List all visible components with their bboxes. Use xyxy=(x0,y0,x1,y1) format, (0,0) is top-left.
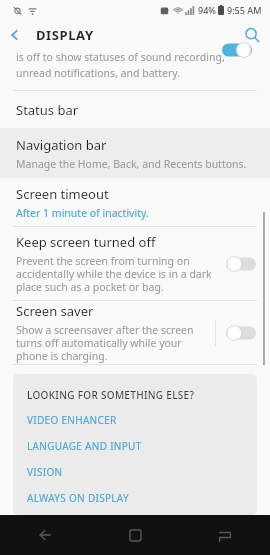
button[interactable]: Keep screen turned off xyxy=(0,227,270,300)
button[interactable]: Toggle xyxy=(226,325,256,341)
staticText: Keep screen turned off xyxy=(16,233,156,251)
staticText: DISPLAY xyxy=(36,26,94,44)
staticText: After 1 minute of inactivity. xyxy=(16,206,149,220)
staticText: VISION xyxy=(27,465,63,479)
staticText: Screen timeout xyxy=(16,185,109,203)
button[interactable]: Back xyxy=(0,20,30,50)
button[interactable]: Status bar xyxy=(0,91,270,128)
button[interactable]: Home xyxy=(90,515,180,555)
staticText: Status bar xyxy=(16,101,79,119)
staticText: 9:55 AM xyxy=(227,4,262,16)
staticText: Show a screensaver after the screen turn… xyxy=(16,323,209,363)
button[interactable]: Back xyxy=(0,515,90,555)
button[interactable]: Toggle xyxy=(226,256,256,272)
button[interactable]: VISION xyxy=(27,465,245,479)
button[interactable]: Screen timeout xyxy=(0,178,270,226)
staticText: LOOKING FOR SOMETHING ELSE? xyxy=(27,388,195,402)
button[interactable]: Screen saver xyxy=(0,301,270,364)
staticText: LANGUAGE AND INPUT xyxy=(27,439,142,453)
staticText: 94% xyxy=(198,4,216,16)
button[interactable]: LANGUAGE AND INPUT xyxy=(27,439,245,453)
staticText: Prevent the screen from turning on accid… xyxy=(16,254,220,294)
staticText: ALWAYS ON DISPLAY xyxy=(27,491,129,503)
button[interactable]: VIDEO ENHANCER xyxy=(27,413,245,427)
staticText: Navigation bar xyxy=(16,136,107,154)
staticText: is off to show statuses of sound recordi… xyxy=(16,50,225,64)
staticText: VIDEO ENHANCER xyxy=(27,413,117,427)
button[interactable]: Search xyxy=(234,20,270,50)
button[interactable]: Toggle xyxy=(222,42,252,58)
button[interactable]: Recents xyxy=(180,515,270,555)
staticText: Manage the Home, Back, and Recents butto… xyxy=(16,157,247,171)
button[interactable]: ALWAYS ON DISPLAY xyxy=(27,491,245,503)
staticText: unread notifications, and battery. xyxy=(16,66,181,80)
button[interactable]: Navigation bar xyxy=(0,128,270,178)
staticText: Screen saver xyxy=(16,302,94,320)
